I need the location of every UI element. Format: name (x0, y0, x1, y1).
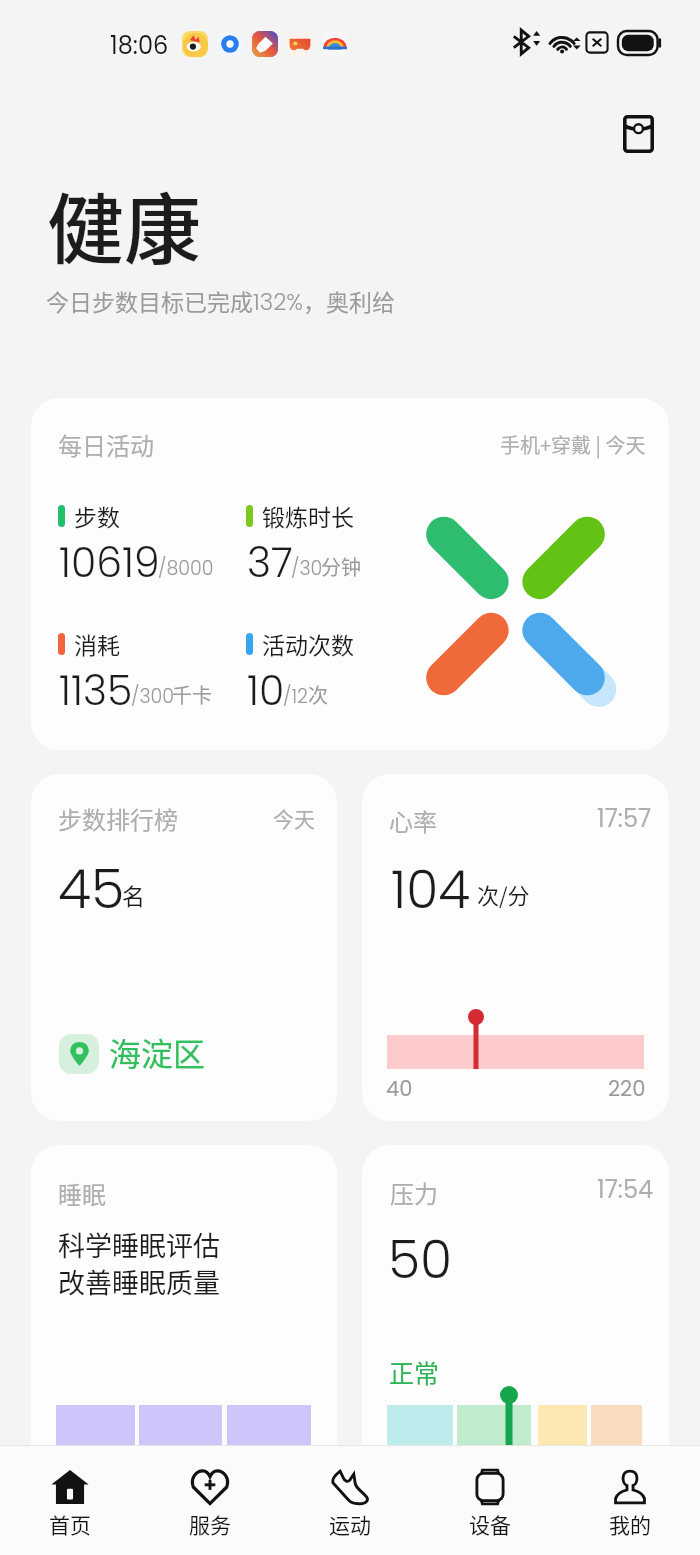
staticText: 10 (247, 662, 285, 719)
button[interactable]: 设备 (420, 1445, 560, 1555)
staticText: 科学睡眠评估 (58, 1225, 220, 1264)
button[interactable]: 首页 (0, 1445, 140, 1555)
staticText: 45 (58, 851, 125, 927)
staticText: 服务 (189, 1509, 231, 1539)
staticText: 今日步数目标已完成 (46, 284, 253, 317)
staticText: 37 (247, 534, 293, 591)
staticText: 10619 (59, 534, 160, 591)
staticText: 分钟 (321, 552, 361, 581)
staticText: 改善睡眠质量 (58, 1262, 220, 1301)
staticText: 步数 (74, 499, 120, 532)
button[interactable]: 运动 (280, 1445, 420, 1555)
button[interactable]: 步数排行榜 (31, 774, 337, 1121)
staticText: 压力 (390, 1175, 438, 1210)
staticText: 104 (391, 853, 471, 926)
staticText: 手机+穿戴 | 今天 (500, 430, 646, 459)
staticText: 今天 (273, 803, 315, 833)
staticText: 40 (386, 1074, 413, 1103)
button[interactable]: 每日活动 (31, 398, 669, 750)
staticText: 次 (308, 680, 328, 709)
button[interactable]: 我的 (560, 1445, 700, 1555)
button[interactable]: 心率 (362, 774, 669, 1121)
staticText: 健康 (47, 169, 201, 280)
button[interactable]: 睡眠 (31, 1145, 337, 1492)
staticText: 17:54 (597, 1173, 654, 1207)
staticText: 正常 (389, 1354, 440, 1390)
staticText: 运动 (329, 1509, 371, 1539)
staticText: 名 (122, 878, 145, 911)
staticText: /8000 (158, 555, 214, 582)
staticText: /30 (291, 555, 323, 582)
staticText: 睡眠 (58, 1176, 106, 1211)
staticText: 18:06 (110, 29, 169, 63)
staticText: 1135 (59, 662, 133, 719)
staticText: 次/分 (477, 878, 530, 910)
button[interactable]: 压力 (362, 1145, 669, 1492)
staticText: ，奥利给 (303, 284, 395, 317)
staticText: /12 (283, 683, 308, 710)
staticText: 17:57 (597, 802, 652, 836)
staticText: 50 (388, 1223, 453, 1296)
staticText: 千卡 (172, 680, 212, 709)
staticText: 我的 (609, 1509, 651, 1539)
button[interactable]: Red packet (611, 107, 665, 161)
staticText: 132% (253, 286, 304, 318)
staticText: 海淀区 (109, 1029, 206, 1075)
button[interactable]: 服务 (140, 1445, 280, 1555)
staticText: /300 (131, 683, 174, 710)
staticText: 消耗 (74, 627, 120, 660)
staticText: 锻炼时长 (262, 499, 354, 532)
staticText: 每日活动 (58, 427, 154, 462)
staticText: 心率 (389, 803, 437, 838)
staticText: 220 (608, 1074, 646, 1103)
staticText: 首页 (49, 1509, 91, 1539)
staticText: 活动次数 (262, 627, 354, 660)
staticText: 设备 (469, 1509, 511, 1539)
staticText: 步数排行榜 (58, 801, 178, 836)
